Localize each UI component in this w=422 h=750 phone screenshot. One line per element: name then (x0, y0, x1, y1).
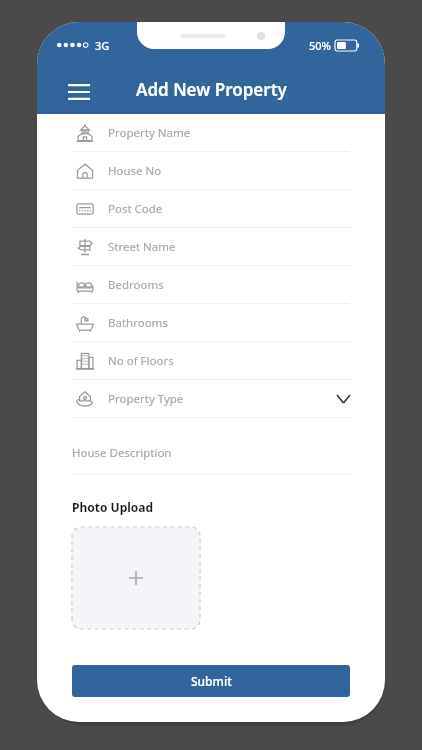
button[interactable]: Bathrooms (72, 304, 350, 342)
button[interactable]: Post Code (72, 190, 350, 228)
button[interactable]: No of Floors (72, 342, 350, 380)
staticText: House Description (72, 445, 172, 461)
staticText: 3G (95, 38, 110, 52)
button[interactable]: Add photo (72, 527, 200, 629)
button[interactable]: Bedrooms (72, 266, 350, 304)
staticText: Post Code (108, 201, 163, 217)
staticText: Property Type (108, 391, 184, 407)
staticText: No of Floors (108, 353, 174, 369)
button[interactable]: Submit (72, 665, 350, 697)
staticText: Bathrooms (108, 315, 168, 331)
staticText: Add New Property (136, 78, 287, 101)
staticText: House No (108, 163, 162, 179)
button[interactable]: Street Name (72, 228, 350, 266)
button[interactable]: Menu (59, 72, 99, 112)
button[interactable]: House No (72, 152, 350, 190)
staticText: Street Name (108, 239, 176, 255)
staticText: Photo Upload (72, 499, 154, 515)
staticText: 50% (309, 38, 331, 53)
staticText: Submit (191, 673, 232, 689)
button[interactable]: Property Type (72, 380, 350, 418)
button[interactable]: Property Name (72, 114, 350, 152)
staticText: Bedrooms (108, 277, 164, 293)
button[interactable]: House Description (72, 418, 350, 475)
staticText: Property Name (108, 125, 191, 141)
